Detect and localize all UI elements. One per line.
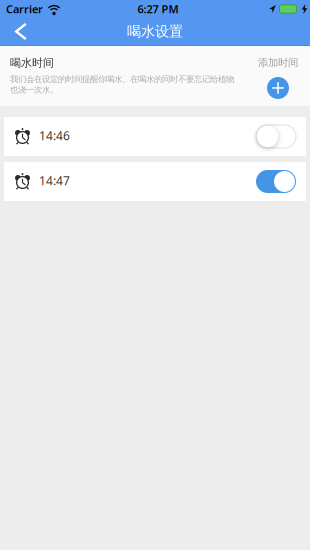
- staticText: 14:46: [39, 127, 70, 144]
- staticText: 6:27 PM: [137, 1, 178, 16]
- staticText: 添加时间: [258, 56, 298, 69]
- staticText: 14:47: [39, 172, 70, 189]
- button[interactable]: Back: [0, 17, 27, 45]
- button[interactable]: 14:47: [0, 162, 310, 201]
- staticText: 也浇一次水。: [10, 84, 58, 95]
- staticText: 我们会在设定的时间提醒你喝水、在喝水的同时不要忘记给植物: [10, 74, 234, 84]
- staticText: 喝水设置: [127, 23, 183, 40]
- button[interactable]: 添加时间: [258, 56, 298, 99]
- button[interactable]: 关闭 14:47 提醒: [256, 170, 296, 193]
- button[interactable]: 开启 14:46 提醒: [256, 125, 296, 148]
- button[interactable]: 14:46: [0, 117, 310, 156]
- staticText: 喝水时间: [10, 56, 54, 70]
- staticText: Carrier: [6, 1, 43, 16]
